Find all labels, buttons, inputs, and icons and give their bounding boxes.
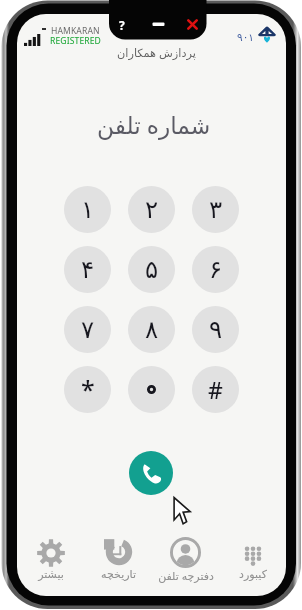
button[interactable]: # bbox=[192, 366, 239, 413]
button[interactable]: ۲ bbox=[128, 186, 175, 233]
staticText: * bbox=[81, 372, 95, 406]
staticText: REGISTERED bbox=[50, 35, 101, 47]
staticText: HAMKARAN bbox=[51, 25, 100, 37]
staticText: ۹ bbox=[209, 315, 223, 344]
button[interactable] bbox=[128, 366, 175, 413]
button[interactable]: تاریخچه bbox=[85, 528, 152, 596]
button[interactable]: ۹ bbox=[192, 306, 239, 353]
staticText: ۶ bbox=[209, 255, 223, 284]
button[interactable]: ۷ bbox=[64, 306, 111, 353]
staticText: ۷ bbox=[81, 315, 95, 344]
staticText: ۹۰۱ bbox=[237, 31, 254, 43]
staticText: ۴ bbox=[81, 255, 95, 284]
button[interactable]: بیشتر bbox=[17, 528, 85, 596]
staticText: ? bbox=[119, 17, 125, 33]
staticText: پردازش همکاران bbox=[117, 45, 196, 60]
staticText: شماره تلفن bbox=[97, 109, 211, 141]
button[interactable]: ۴ bbox=[64, 246, 111, 293]
staticText: تاریخچه bbox=[101, 568, 136, 581]
button[interactable]: ۸ bbox=[128, 306, 175, 353]
staticText: ۸ bbox=[145, 315, 159, 344]
staticText: دفترچه تلفن bbox=[158, 568, 214, 583]
staticText: بیشتر bbox=[38, 568, 64, 581]
button[interactable]: ۱ bbox=[64, 186, 111, 233]
button[interactable]: ۳ bbox=[192, 186, 239, 233]
staticText: ۱ bbox=[81, 195, 95, 224]
staticText: ۲ bbox=[145, 195, 159, 224]
button[interactable]: دفترچه تلفن bbox=[152, 528, 219, 596]
staticText: کیبورد bbox=[239, 568, 267, 581]
staticText: ۳ bbox=[209, 195, 223, 224]
staticText: ۵ bbox=[145, 255, 159, 284]
button[interactable]: ۵ bbox=[128, 246, 175, 293]
button[interactable]: * bbox=[64, 366, 111, 413]
button[interactable]: کیبورد bbox=[219, 528, 286, 596]
staticText: # bbox=[208, 374, 223, 405]
button[interactable]: ۶ bbox=[192, 246, 239, 293]
button[interactable]: Call bbox=[129, 451, 173, 495]
